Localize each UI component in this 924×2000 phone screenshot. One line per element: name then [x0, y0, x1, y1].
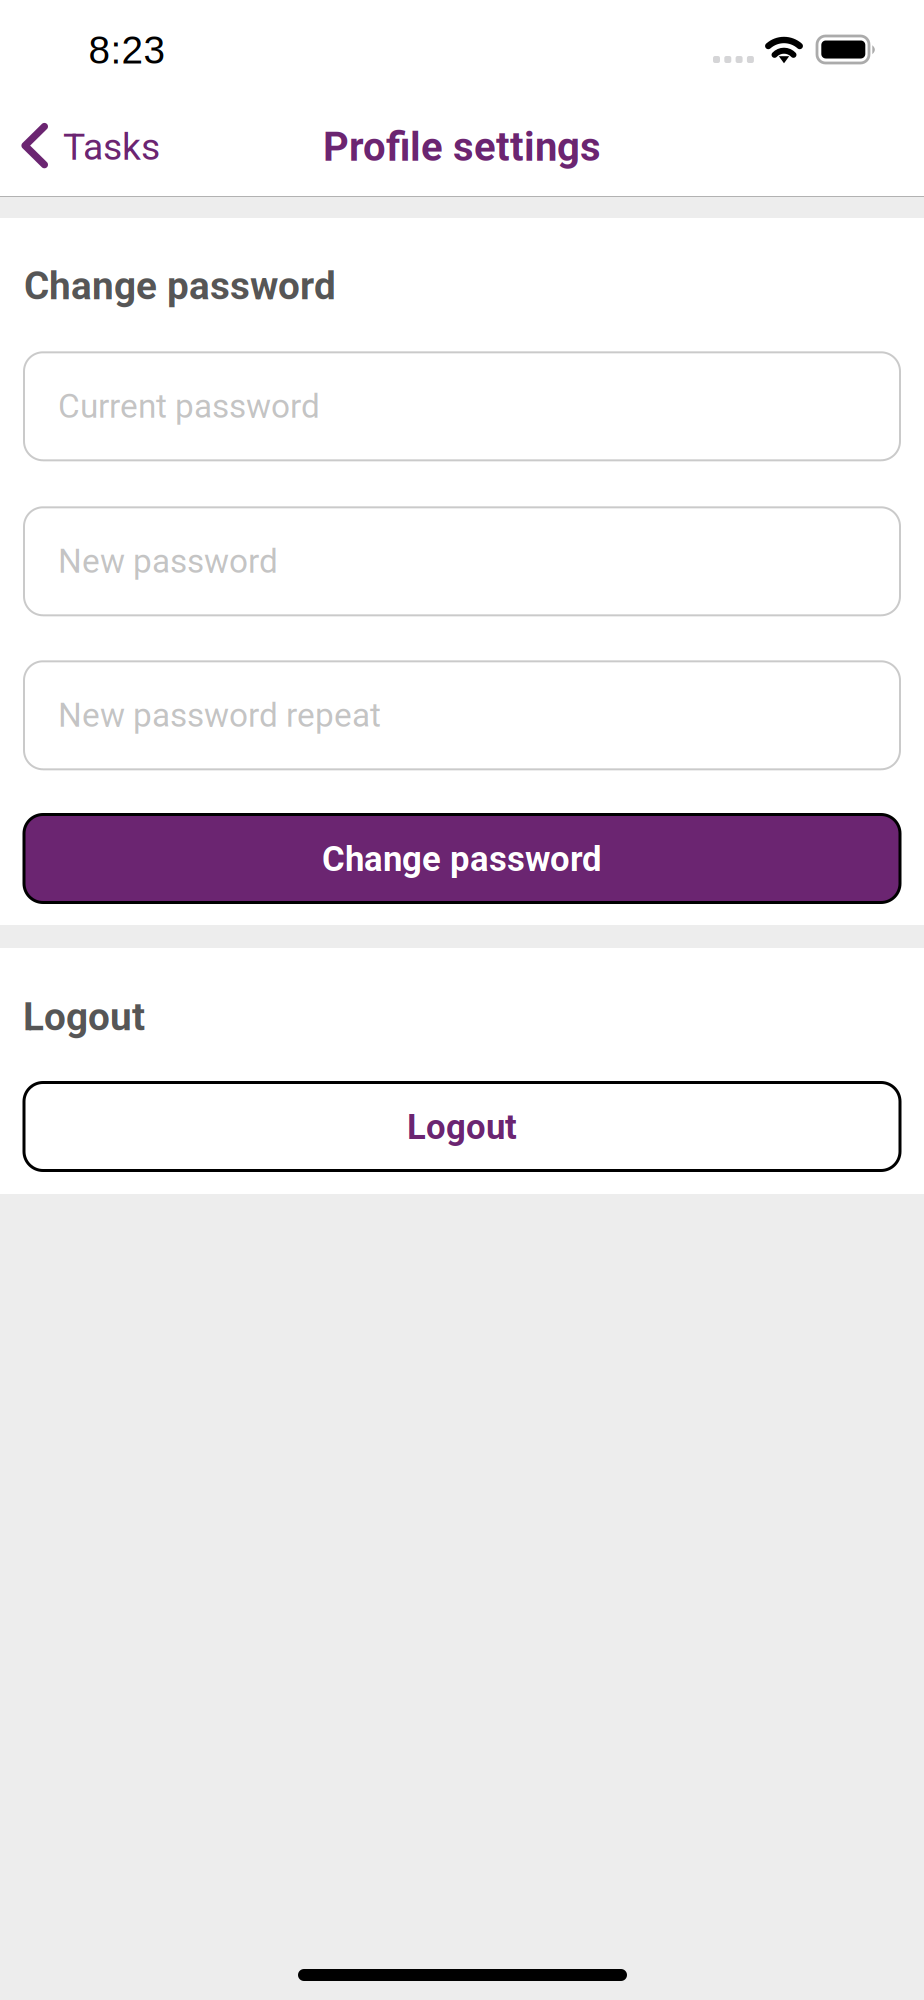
staticText: 8:23 — [88, 28, 165, 72]
staticText: New password repeat — [58, 696, 381, 735]
button[interactable]: Change password — [0, 0, 876, 88]
button[interactable]: New password — [0, 0, 876, 108]
staticText: Current password — [58, 387, 320, 426]
staticText: Change password — [24, 263, 336, 309]
staticText: Logout — [407, 1107, 517, 1147]
staticText: Change password — [322, 839, 602, 879]
staticText: Tasks — [63, 125, 160, 169]
staticText: New password — [58, 542, 278, 581]
staticText: Logout — [23, 994, 145, 1040]
staticText: Profile settings — [323, 124, 601, 170]
button[interactable]: Current password — [0, 0, 876, 108]
button[interactable]: Logout — [0, 0, 876, 88]
button[interactable]: Tasks — [0, 0, 200, 76]
button[interactable]: New password repeat — [0, 0, 876, 108]
